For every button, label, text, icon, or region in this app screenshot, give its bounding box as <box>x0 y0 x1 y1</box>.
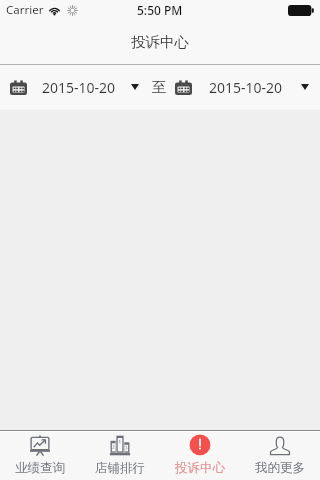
other: Pick date <box>175 80 192 95</box>
button[interactable]: 我的更多 <box>240 432 320 480</box>
staticText: 投诉中心 <box>175 460 225 476</box>
staticText: 2015-10-20 <box>209 78 283 97</box>
staticText: Carrier <box>6 2 44 18</box>
staticText: 至 <box>152 78 167 96</box>
button[interactable]: 业绩查询 <box>0 432 80 480</box>
button[interactable]: 店铺排行 <box>80 432 160 480</box>
staticText: 5:50 PM <box>137 2 183 18</box>
staticText: 2015-10-20 <box>42 78 116 97</box>
other: Pick date <box>10 80 27 95</box>
staticText: 我的更多 <box>255 460 305 476</box>
button[interactable]: Pick date <box>0 65 152 109</box>
staticText: 店铺排行 <box>95 460 145 476</box>
staticText: 投诉中心 <box>131 33 189 51</box>
staticText: 业绩查询 <box>15 460 65 476</box>
button[interactable]: Pick date <box>167 65 320 109</box>
button[interactable]: 投诉中心 <box>160 432 240 480</box>
